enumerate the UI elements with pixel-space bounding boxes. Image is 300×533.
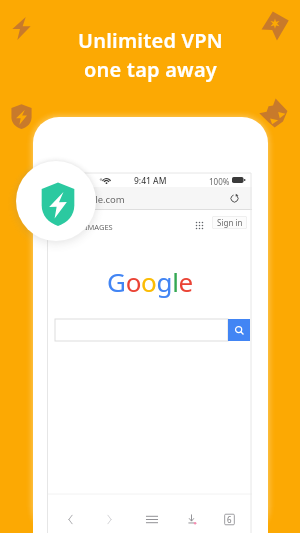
staticText: 100% [209, 176, 230, 187]
staticText: 6 [227, 514, 232, 525]
button[interactable]: IMAGES [81, 219, 117, 235]
button[interactable]: Back [56, 505, 84, 533]
staticText: one tap away [84, 56, 217, 83]
button[interactable]: google.com [48, 187, 252, 210]
staticText: IMAGES [85, 222, 113, 232]
staticText: Unlimited VPN [78, 27, 223, 54]
button[interactable]: Search [228, 319, 250, 341]
staticText: 9:41 AM [134, 175, 167, 187]
button[interactable]: Forward [95, 505, 123, 533]
button[interactable] [55, 319, 228, 341]
button[interactable]: Bookmarks [177, 505, 205, 533]
button[interactable]: Share [138, 505, 166, 533]
button[interactable]: Sign in [212, 216, 247, 229]
staticText: Google [107, 264, 193, 299]
staticText: Sign in [217, 217, 243, 228]
staticText: google.com [72, 193, 125, 206]
button[interactable]: Google apps [192, 218, 206, 232]
button[interactable]: VPN shield [16, 161, 96, 241]
button[interactable]: Tabs [215, 505, 243, 533]
